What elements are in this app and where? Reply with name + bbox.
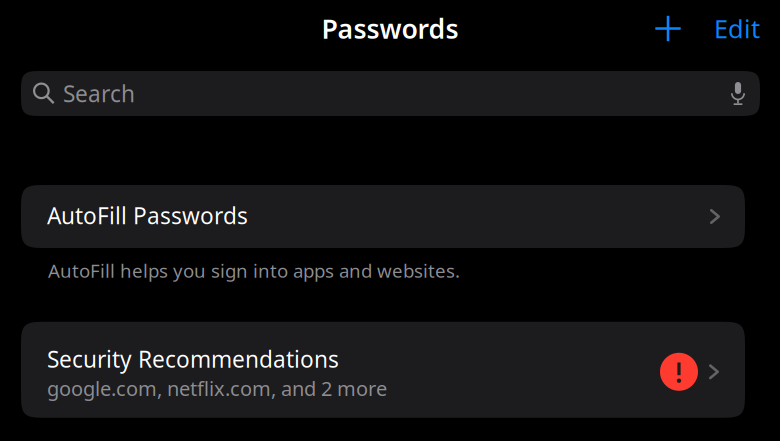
staticText: Edit <box>714 12 760 45</box>
button[interactable]: AutoFill Passwords <box>21 185 745 248</box>
staticText: AutoFill helps you sign into apps and we… <box>48 258 460 283</box>
button[interactable]: Add Password <box>646 6 690 50</box>
button[interactable]: Edit <box>714 6 760 50</box>
staticText: Security Recommendations <box>47 344 339 374</box>
staticText: Search <box>63 78 135 108</box>
staticText: google.com, netflix.com, and 2 more <box>47 375 387 402</box>
staticText: AutoFill Passwords <box>47 200 248 230</box>
staticText: Passwords <box>321 11 458 46</box>
button[interactable]: Security Recommendations <box>21 322 745 418</box>
button[interactable]: Search <box>21 71 760 116</box>
